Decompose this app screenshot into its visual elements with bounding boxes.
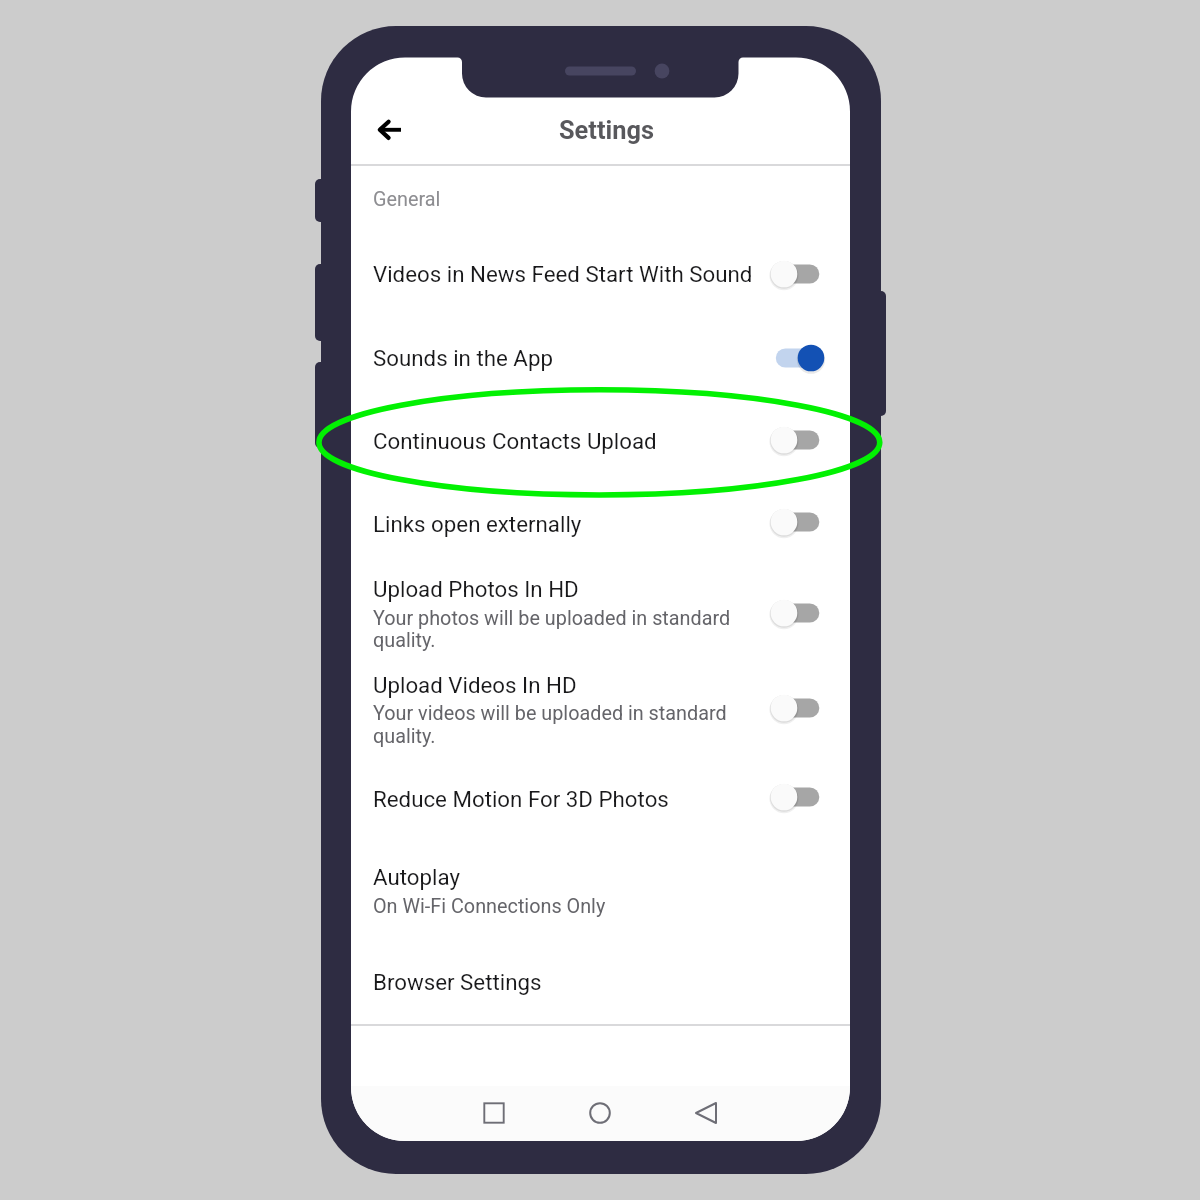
button[interactable]	[351, 399, 850, 481]
button[interactable]: Home	[573, 1086, 627, 1140]
staticText: Sounds in the App	[373, 345, 553, 371]
staticText: quality.	[373, 725, 436, 748]
staticText: Upload Videos In HD	[373, 672, 577, 698]
staticText: Autoplay	[373, 864, 460, 890]
staticText: Settings	[357, 115, 856, 145]
button[interactable]	[351, 316, 850, 399]
button[interactable]: Switch off	[767, 422, 827, 458]
staticText: Videos in News Feed Start With Sound	[373, 261, 753, 287]
button[interactable]: Switch off	[767, 779, 827, 815]
staticText: Reduce Motion For 3D Photos	[373, 786, 669, 812]
button[interactable]	[351, 758, 850, 840]
staticText: General	[373, 188, 441, 211]
button[interactable]: Switch off	[767, 690, 827, 726]
button[interactable]	[351, 481, 850, 559]
button[interactable]: Back	[367, 107, 413, 153]
button[interactable]: Switch off	[767, 595, 827, 631]
staticText: quality.	[373, 629, 436, 652]
staticText: Browser Settings	[373, 969, 542, 995]
button[interactable]	[351, 840, 850, 933]
button[interactable]: Back	[679, 1086, 733, 1140]
button[interactable]: Switch off	[767, 256, 827, 292]
button[interactable]	[351, 559, 850, 662]
staticText: Links open externally	[373, 511, 582, 537]
button[interactable]	[351, 933, 850, 1015]
staticText: Your videos will be uploaded in standard	[373, 702, 727, 725]
staticText: Continuous Contacts Upload	[373, 428, 657, 454]
button[interactable]: Switch off	[767, 504, 827, 540]
staticText: Your photos will be uploaded in standard	[373, 607, 731, 630]
button[interactable]	[351, 233, 850, 316]
button[interactable]: Switch on	[767, 340, 827, 376]
staticText: Upload Photos In HD	[373, 576, 579, 602]
button[interactable]	[351, 662, 850, 758]
button[interactable]: Recent apps	[467, 1086, 521, 1140]
staticText: On Wi-Fi Connections Only	[373, 895, 606, 918]
